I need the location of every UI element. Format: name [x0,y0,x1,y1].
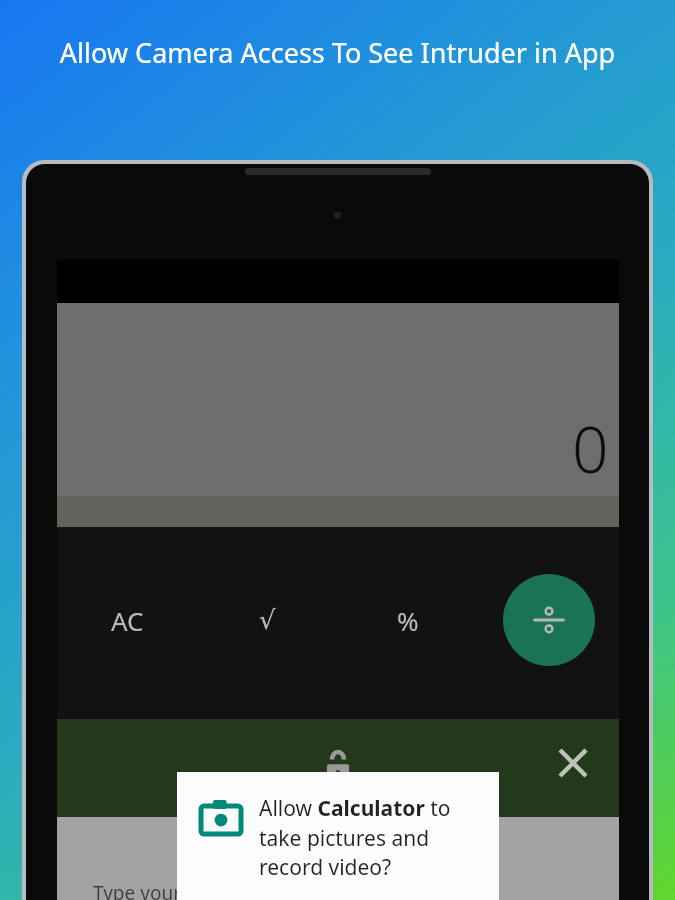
button[interactable]: Divide [503,574,595,666]
staticText: AC [111,603,144,638]
button[interactable]: % [337,565,478,675]
staticText: % [397,603,419,638]
staticText: Allow Calculator to take pictures and re… [259,794,485,881]
staticText: 0 [572,405,609,492]
staticText: Allow Camera Access To See Intruder in A… [40,34,635,71]
button[interactable]: AC [57,565,197,675]
staticText: Type your password here and hit [93,880,386,900]
staticText: √ [259,605,276,635]
button[interactable]: Close [547,737,599,789]
button[interactable]: √ [197,565,337,675]
